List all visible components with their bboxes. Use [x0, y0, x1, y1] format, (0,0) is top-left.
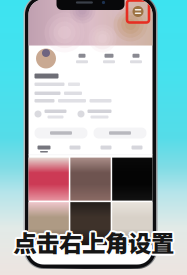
staticText: 点击右上角设置 — [13, 225, 174, 259]
staticText: 点击右上角设置 — [11, 225, 172, 259]
staticText: 点击右上角设置 — [11, 226, 172, 260]
button[interactable]: Profile action — [34, 127, 87, 138]
staticText: 点击右上角设置 — [11, 223, 172, 257]
button[interactable]: Tab — [59, 143, 90, 154]
button[interactable]: Settings — [127, 0, 149, 22]
staticText: 点击右上角设置 — [14, 226, 175, 260]
button[interactable]: Profile action — [93, 127, 146, 138]
button[interactable]: Tab — [28, 143, 59, 154]
button[interactable]: Tab — [121, 143, 152, 154]
staticText: 点击右上角设置 — [14, 223, 175, 257]
staticText: 点击右上角设置 — [15, 225, 176, 259]
button[interactable]: Tab — [90, 143, 121, 154]
staticText: 点击右上角设置 — [13, 227, 174, 261]
staticText: 点击右上角设置 — [13, 223, 174, 257]
